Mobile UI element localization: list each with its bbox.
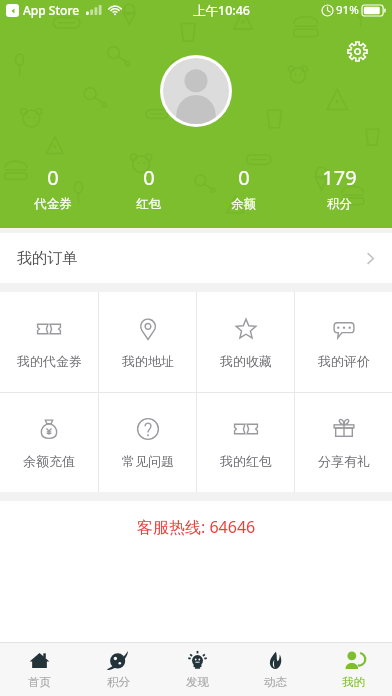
staticText: 179 xyxy=(322,164,357,191)
staticText: 上午10:46 xyxy=(193,2,251,19)
staticText: 常见问题 xyxy=(122,453,174,469)
staticText: 0 xyxy=(143,164,155,191)
staticText: 客服热线: 64646 xyxy=(137,516,256,538)
button[interactable]: 我的 xyxy=(314,643,392,696)
button[interactable]: 我的评价 xyxy=(295,292,392,392)
staticText: 动态 xyxy=(264,675,287,689)
staticText: 0 xyxy=(47,164,59,191)
button[interactable]: 我的收藏 xyxy=(197,292,294,392)
staticText: 我的收藏 xyxy=(220,353,272,369)
staticText: 91% xyxy=(336,2,359,18)
button[interactable]: 常见问题 xyxy=(99,393,196,492)
button[interactable]: 积分 xyxy=(79,643,158,696)
button[interactable]: 客服热线: 64646 xyxy=(0,501,392,553)
staticText: 积分 xyxy=(107,675,130,689)
staticText: 0 xyxy=(238,164,250,191)
staticText: 分享有礼 xyxy=(318,453,370,469)
staticText: 我的评价 xyxy=(318,353,370,369)
staticText: 代金券 xyxy=(34,196,72,212)
staticText: App Store xyxy=(23,2,80,18)
staticText: 余额充值 xyxy=(23,453,75,469)
staticText: 我的地址 xyxy=(122,353,174,369)
button[interactable]: 0 xyxy=(10,162,95,214)
button[interactable]: 余额充值 xyxy=(0,393,98,492)
button[interactable]: 发现 xyxy=(158,643,236,696)
button[interactable]: Avatar xyxy=(160,55,232,127)
staticText: 我的红包 xyxy=(220,453,272,469)
staticText: 发现 xyxy=(186,675,209,689)
button[interactable]: Settings xyxy=(342,36,372,66)
staticText: 我的 xyxy=(342,675,365,689)
staticText: 红包 xyxy=(136,196,161,212)
button[interactable]: 动态 xyxy=(236,643,314,696)
button[interactable]: 我的红包 xyxy=(197,393,294,492)
button[interactable]: 0 xyxy=(201,162,286,214)
button[interactable]: 我的地址 xyxy=(99,292,196,392)
staticText: 余额 xyxy=(231,196,256,212)
button[interactable]: 分享有礼 xyxy=(295,393,392,492)
button[interactable]: 我的代金券 xyxy=(0,292,98,392)
button[interactable]: 我的订单 xyxy=(0,233,392,283)
staticText: 我的代金券 xyxy=(17,353,82,369)
staticText: 首页 xyxy=(28,675,51,689)
staticText: 我的订单 xyxy=(17,249,77,268)
staticText: 积分 xyxy=(327,196,352,212)
button[interactable]: 179 xyxy=(297,162,382,214)
button[interactable]: 0 xyxy=(106,162,191,214)
button[interactable]: 首页 xyxy=(0,643,79,696)
